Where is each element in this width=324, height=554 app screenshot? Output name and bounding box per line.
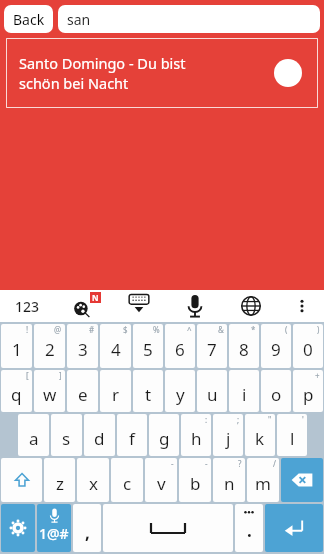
staticText: u [207,383,218,406]
button[interactable]: r [100,370,131,412]
staticText: j [226,427,231,450]
button[interactable]: 3 [67,324,98,368]
button[interactable]: 1 [1,324,32,368]
button[interactable]: Back [4,5,53,33]
button[interactable]: 4 [100,324,131,368]
button[interactable]: l [277,414,307,456]
staticText: ' [302,414,304,425]
button[interactable]: Voice input [167,290,223,322]
button[interactable]: Themes [55,290,111,322]
staticText: 7 [207,338,217,361]
button[interactable]: comma [73,504,101,552]
staticText: [ [26,370,29,381]
button[interactable]: u [197,370,227,412]
button[interactable]: i [229,370,259,412]
staticText: , [85,521,90,544]
staticText: w [43,383,57,406]
button[interactable]: Shift [1,458,42,502]
button[interactable]: 6 [165,324,195,368]
staticText: i [242,383,247,406]
button[interactable]: 0 [293,324,323,368]
button[interactable]: t [133,370,163,412]
staticText: b [190,472,201,495]
staticText: / [273,458,276,469]
button[interactable]: Enter [265,504,323,552]
staticText: t [145,383,152,406]
staticText: - [171,458,174,469]
button[interactable]: q [1,370,32,412]
staticText: san [67,10,91,29]
button[interactable]: More options [279,290,324,322]
button[interactable]: v [145,458,177,502]
staticText: k [255,427,265,450]
button[interactable]: Space [103,504,233,552]
staticText: ^ [187,324,192,335]
button[interactable]: Symbols [37,504,71,552]
staticText: 1@# [39,524,69,543]
staticText: 3 [78,338,88,361]
staticText: v [157,472,166,495]
staticText: ; [237,414,240,425]
button[interactable]: c [111,458,143,502]
button[interactable]: 7 [197,324,227,368]
staticText: * [251,324,256,335]
button[interactable]: k [245,414,275,456]
button[interactable]: a [18,414,49,456]
button[interactable]: 8 [229,324,259,368]
button[interactable]: 2 [34,324,65,368]
staticText: % [153,324,160,335]
button[interactable]: Settings [1,504,35,552]
button[interactable]: z [44,458,75,502]
staticText: f [129,427,135,450]
button[interactable]: m [247,458,279,502]
button[interactable]: h [181,414,211,456]
button[interactable]: j [213,414,243,456]
staticText: Santo Domingo - Du bist schön bei Nacht [19,53,186,93]
staticText: q [11,383,22,406]
button[interactable]: b [179,458,211,502]
button[interactable]: 5 [133,324,163,368]
button[interactable]: period [235,504,263,552]
button[interactable]: w [34,370,65,412]
staticText: @ [54,324,62,335]
staticText: ) [317,324,320,335]
staticText: s [62,427,71,450]
button[interactable]: Change language [223,290,279,322]
staticText: N [92,292,99,303]
button[interactable]: x [77,458,109,502]
staticText: 0 [303,338,313,361]
staticText: 9 [271,338,281,361]
staticText: . [247,519,252,542]
button[interactable]: Play [274,59,302,87]
button[interactable]: san [58,5,320,33]
staticText: : [205,414,208,425]
staticText: & [218,324,224,335]
button[interactable]: 123 [0,290,55,322]
staticText: Back [13,10,45,29]
button[interactable]: Santo Domingo - Du bist schön bei Nacht [6,38,318,108]
button[interactable]: e [67,370,98,412]
staticText: ? [238,458,242,469]
button[interactable]: o [261,370,291,412]
button[interactable]: Backspace [281,458,323,502]
staticText: 123 [15,297,40,316]
button[interactable]: y [165,370,195,412]
staticText: 4 [111,338,121,361]
button[interactable]: f [117,414,147,456]
staticText: - [205,458,208,469]
button[interactable]: g [149,414,179,456]
button[interactable]: Hide keyboard [111,290,167,322]
button[interactable]: d [84,414,115,456]
staticText: 5 [143,338,153,361]
button[interactable]: s [51,414,82,456]
staticText: o [271,383,282,406]
staticText: r [112,383,120,406]
staticText: ] [59,370,62,381]
button[interactable]: p [293,370,323,412]
staticText: 1 [12,338,22,361]
staticText: 6 [175,338,185,361]
staticText: y [176,383,185,406]
staticText: g [159,427,170,450]
button[interactable]: n [213,458,245,502]
button[interactable]: 9 [261,324,291,368]
